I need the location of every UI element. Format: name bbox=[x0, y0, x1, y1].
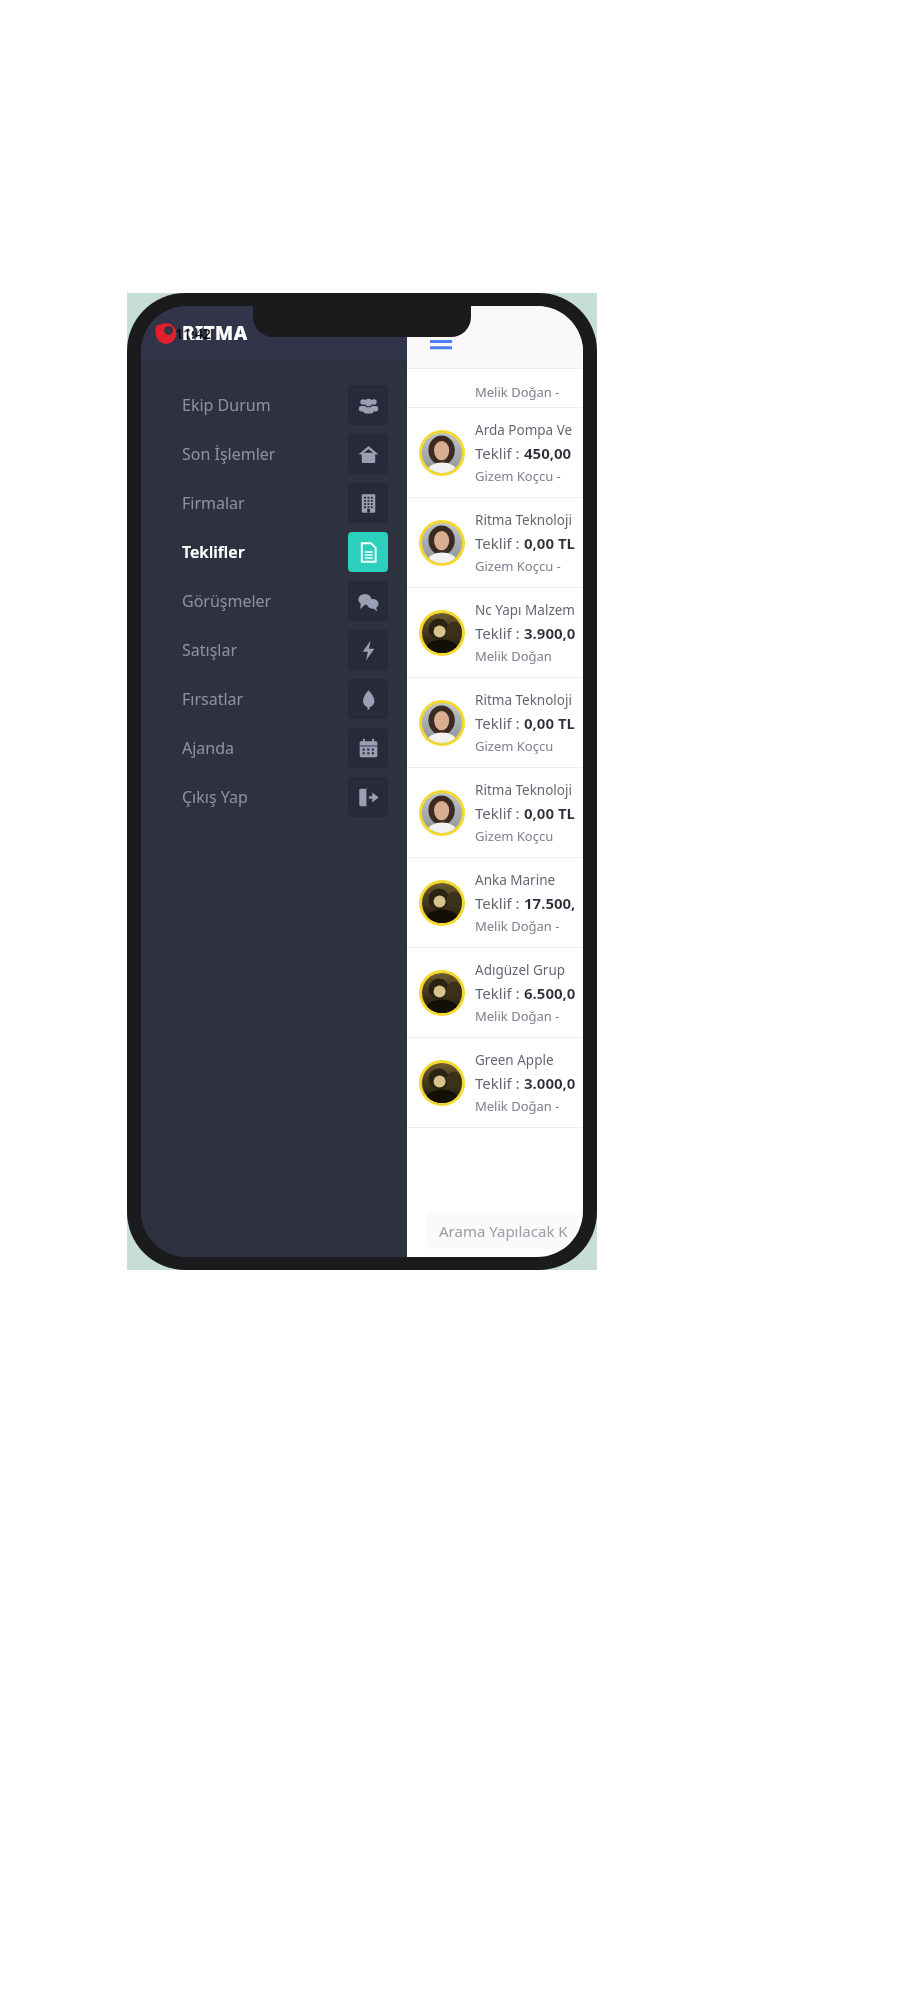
button[interactable]: Ajanda bbox=[141, 723, 407, 772]
button[interactable]: Fırsatlar bbox=[141, 674, 407, 723]
staticText: 0,00 TL bbox=[524, 803, 575, 823]
staticText: Satışlar bbox=[182, 639, 348, 661]
staticText: Teklif : bbox=[475, 533, 524, 553]
staticText: Teklif : bbox=[475, 623, 524, 643]
button[interactable]: Çıkış Yap bbox=[141, 772, 407, 821]
button[interactable]: Arda Pompa Ve bbox=[407, 408, 583, 497]
staticText: Gizem Koçcu - bbox=[475, 467, 561, 485]
button[interactable]: Menu bbox=[425, 326, 457, 358]
staticText: Melik Doğan bbox=[475, 647, 552, 665]
staticText: Çıkış Yap bbox=[182, 786, 348, 808]
button[interactable]: Görüşmeler bbox=[141, 576, 407, 625]
button[interactable]: Ekip Durum bbox=[141, 380, 407, 429]
staticText: Melik Doğan - bbox=[475, 1007, 560, 1025]
staticText: Gizem Koçcu bbox=[475, 737, 554, 755]
staticText: Green Apple bbox=[475, 1051, 554, 1069]
staticText: Teklif : bbox=[475, 983, 524, 1003]
staticText: Teklif : bbox=[475, 1073, 524, 1093]
button[interactable]: Ritma Teknoloji bbox=[407, 498, 583, 587]
staticText: Gizem Koçcu bbox=[475, 827, 554, 845]
button[interactable]: Arama Yapılacak K bbox=[427, 1213, 579, 1249]
staticText: Ritma Teknoloji bbox=[475, 781, 572, 799]
staticText: Arda Pompa Ve bbox=[475, 421, 573, 439]
staticText: Gizem Koçcu - bbox=[475, 557, 561, 575]
button[interactable]: Nc Yapı Malzem bbox=[407, 588, 583, 677]
staticText: Firmalar bbox=[182, 492, 348, 514]
staticText: Görüşmeler bbox=[182, 590, 348, 612]
button[interactable]: Adıgüzel Grup bbox=[407, 948, 583, 1037]
button[interactable]: Teklifler bbox=[141, 527, 407, 576]
staticText: 6.500,0 bbox=[524, 983, 576, 1003]
staticText: Teklif : bbox=[475, 443, 524, 463]
staticText: Teklif : bbox=[475, 803, 524, 823]
staticText: Teklif : bbox=[475, 893, 524, 913]
staticText: Fırsatlar bbox=[182, 688, 348, 710]
staticText: RITMA bbox=[182, 320, 248, 346]
staticText: Son İşlemler bbox=[182, 443, 348, 465]
staticText: Teklif : bbox=[475, 713, 524, 733]
staticText: 3.000,0 bbox=[524, 1073, 576, 1093]
staticText: 11:42 bbox=[175, 324, 211, 343]
staticText: 17.500, bbox=[524, 893, 576, 913]
staticText: Ekip Durum bbox=[182, 394, 348, 416]
button[interactable]: Anka Marine bbox=[407, 858, 583, 947]
button[interactable]: Firmalar bbox=[141, 478, 407, 527]
staticText: 3.900,0 bbox=[524, 623, 576, 643]
staticText: Nc Yapı Malzem bbox=[475, 601, 575, 619]
button[interactable]: Ritma Teknoloji bbox=[407, 768, 583, 857]
button[interactable]: Son İşlemler bbox=[141, 429, 407, 478]
staticText: 0,00 TL bbox=[524, 533, 575, 553]
staticText: 0,00 TL bbox=[524, 713, 575, 733]
staticText: Melik Doğan - bbox=[475, 1097, 560, 1115]
staticText: Adıgüzel Grup bbox=[475, 961, 566, 979]
staticText: Ritma Teknoloji bbox=[475, 691, 572, 709]
staticText: Teklifler bbox=[182, 541, 348, 563]
staticText: Melik Doğan - bbox=[475, 383, 560, 401]
staticText: Anka Marine bbox=[475, 871, 556, 889]
button[interactable]: Green Apple bbox=[407, 1038, 583, 1127]
staticText: Melik Doğan - bbox=[475, 917, 560, 935]
staticText: Arama Yapılacak K bbox=[439, 1221, 568, 1241]
button[interactable]: Satışlar bbox=[141, 625, 407, 674]
staticText: Ajanda bbox=[182, 737, 348, 759]
button[interactable]: Ritma Teknoloji bbox=[407, 678, 583, 767]
staticText: 450,00 bbox=[524, 443, 572, 463]
button[interactable]: Melik Doğan - bbox=[407, 369, 583, 407]
staticText: Ritma Teknoloji bbox=[475, 511, 572, 529]
